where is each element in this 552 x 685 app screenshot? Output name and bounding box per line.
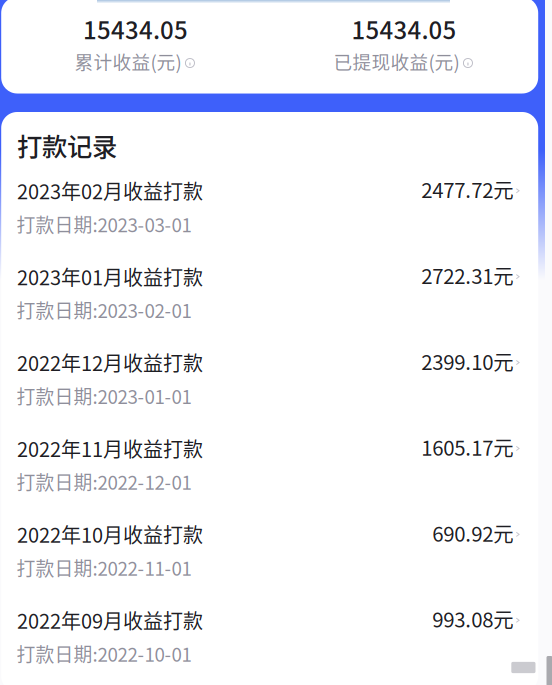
staticText: 15434.05 [83, 11, 188, 46]
button[interactable]: 2022年10月收益打款 [1, 504, 538, 590]
button[interactable]: 2022年12月收益打款 [1, 332, 538, 418]
button[interactable]: 15434.05 [270, 0, 538, 92]
staticText: 1605.17元 [421, 432, 513, 462]
staticText: 已提现收益(元) [333, 47, 459, 74]
staticText: 打款日期:2022-11-01 [16, 554, 191, 581]
staticText: 打款日期:2023-03-01 [16, 210, 191, 238]
staticText: 打款日期:2022-12-01 [16, 468, 191, 495]
staticText: 15434.05 [351, 11, 456, 46]
staticText: 打款日期:2022-10-01 [16, 640, 191, 667]
button[interactable]: 2022年11月收益打款 [1, 418, 538, 504]
staticText: 2477.72元 [421, 174, 513, 204]
staticText: 2022年11月收益打款 [17, 434, 203, 463]
staticText: 2022年09月收益打款 [17, 605, 203, 634]
button[interactable]: 15434.05 [1, 0, 270, 92]
button[interactable]: 2023年02月收益打款 [1, 160, 538, 246]
staticText: 2399.10元 [421, 346, 513, 376]
button[interactable]: 2022年09月收益打款 [1, 589, 538, 675]
staticText: 打款记录 [17, 127, 117, 163]
staticText: 累计收益(元) [74, 47, 181, 74]
staticText: 2022年10月收益打款 [17, 520, 203, 549]
staticText: 打款日期:2023-01-01 [16, 382, 191, 409]
staticText: 2023年02月收益打款 [17, 176, 203, 205]
button[interactable]: 2023年01月收益打款 [1, 246, 538, 332]
staticText: 993.08元 [432, 604, 513, 633]
staticText: 2022年12月收益打款 [17, 348, 203, 377]
staticText: 690.92元 [432, 518, 513, 548]
staticText: 打款日期:2023-02-01 [16, 296, 191, 323]
staticText: 2722.31元 [421, 260, 513, 290]
staticText: 2023年01月收益打款 [17, 262, 203, 291]
